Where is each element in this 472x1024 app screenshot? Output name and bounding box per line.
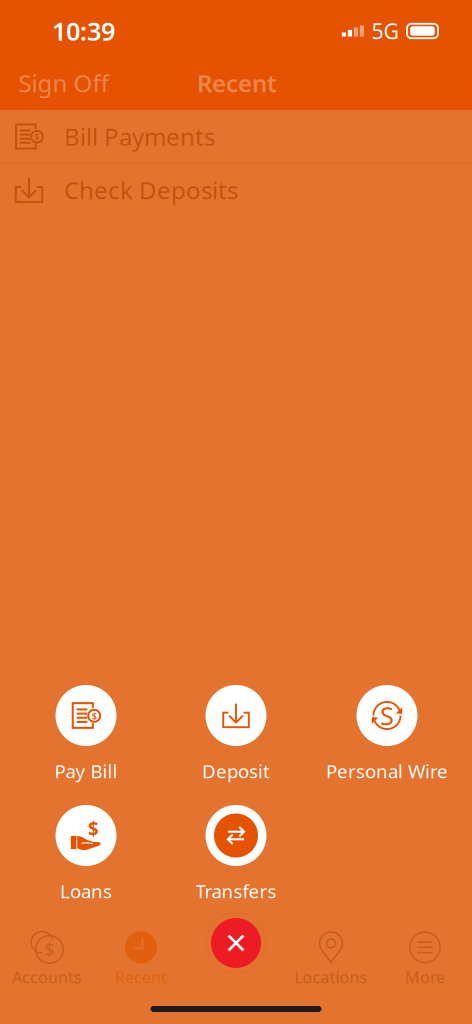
staticText: 10:39 [52,14,115,48]
staticText: Transfers [195,879,276,903]
staticText: Personal Wire [326,759,448,783]
button[interactable]: $ [0,802,176,903]
staticText: Recent [197,67,277,99]
staticText: Sign Off [18,67,109,99]
button[interactable]: More [378,929,472,989]
button[interactable]: Deposit [146,682,326,783]
staticText: $ [88,816,99,841]
staticText: More [405,966,445,988]
staticText: $ [44,938,54,961]
staticText: Locations [294,966,367,988]
staticText: Bill Payments [64,121,215,152]
staticText: $ [92,710,97,722]
button[interactable]: Transfers [146,802,326,903]
button[interactable]: S [297,682,472,783]
button[interactable]: Close menu [205,912,267,974]
button[interactable]: Check Deposits [0,163,472,216]
button[interactable]: Recent [94,929,188,989]
staticText: Check Deposits [64,174,238,206]
staticText: Loans [60,879,112,903]
staticText: Accounts [12,966,82,988]
button[interactable]: $ [0,682,176,783]
staticText: Deposit [202,759,270,783]
button[interactable]: Sign Off [0,57,129,109]
button[interactable]: $ [0,929,94,989]
staticText: Pay Bill [54,759,117,783]
staticText: S [380,699,394,732]
staticText: $ [34,131,39,142]
staticText: Recent [115,966,167,988]
button[interactable]: $ [0,110,472,163]
staticText: 5G [371,17,399,45]
button[interactable]: Locations [284,929,378,989]
